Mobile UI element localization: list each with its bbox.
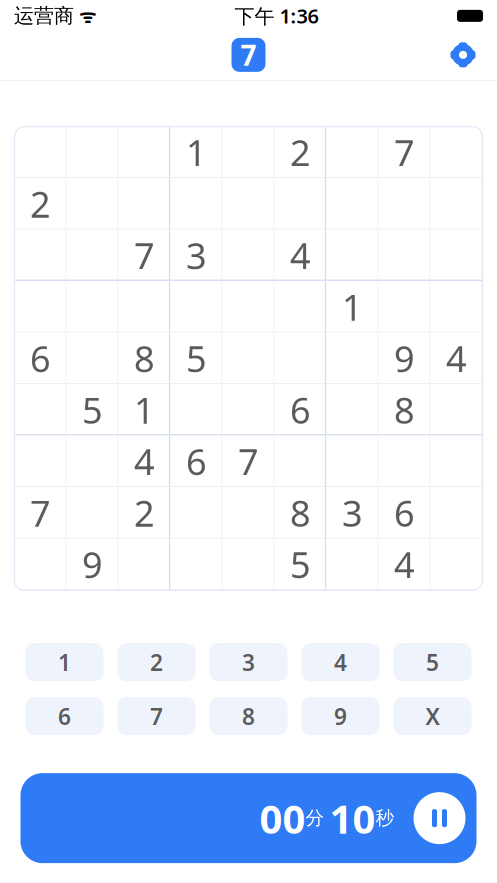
- button[interactable]: Cell row 7 column 2: [66, 436, 118, 487]
- button[interactable]: Cell row 5 column 3: [118, 333, 170, 384]
- button[interactable]: Cell row 9 column 6: [274, 539, 326, 590]
- button[interactable]: 8: [209, 697, 287, 735]
- button[interactable]: 1: [25, 643, 103, 681]
- button[interactable]: Cell row 9 column 9: [430, 539, 482, 590]
- button[interactable]: X: [393, 697, 471, 735]
- button[interactable]: 9: [301, 697, 379, 735]
- button[interactable]: Cell row 3 column 3: [118, 230, 170, 281]
- button[interactable]: Cell row 6 column 8: [378, 384, 430, 436]
- button[interactable]: Cell row 8 column 7: [326, 487, 378, 539]
- button[interactable]: Cell row 5 column 7: [326, 333, 378, 384]
- button[interactable]: Cell row 6 column 4: [170, 384, 222, 436]
- button[interactable]: Pause: [408, 787, 470, 849]
- staticText: 运营商: [14, 4, 74, 28]
- button[interactable]: Cell row 8 column 8: [378, 487, 430, 539]
- button[interactable]: Cell row 2 column 6: [274, 178, 326, 230]
- button[interactable]: Cell row 1 column 7: [326, 127, 378, 178]
- button[interactable]: Cell row 8 column 1: [14, 487, 66, 539]
- button[interactable]: Cell row 8 column 6: [274, 487, 326, 539]
- button[interactable]: Cell row 8 column 3: [118, 487, 170, 539]
- button[interactable]: Cell row 5 column 8: [378, 333, 430, 384]
- button[interactable]: Cell row 1 column 6: [274, 127, 326, 178]
- button[interactable]: Cell row 3 column 1: [14, 230, 66, 281]
- button[interactable]: 7: [231, 38, 265, 72]
- button[interactable]: Cell row 4 column 7: [326, 281, 378, 333]
- button[interactable]: Cell row 7 column 5: [222, 436, 274, 487]
- button[interactable]: Cell row 7 column 7: [326, 436, 378, 487]
- button[interactable]: Cell row 1 column 5: [222, 127, 274, 178]
- staticText: 下午 1:36: [234, 3, 318, 29]
- button[interactable]: Cell row 9 column 7: [326, 539, 378, 590]
- button[interactable]: 2: [117, 643, 195, 681]
- button[interactable]: Cell row 6 column 9: [430, 384, 482, 436]
- staticText: 00: [259, 792, 305, 845]
- button[interactable]: Cell row 3 column 6: [274, 230, 326, 281]
- button[interactable]: Cell row 3 column 7: [326, 230, 378, 281]
- button[interactable]: Cell row 7 column 1: [14, 436, 66, 487]
- button[interactable]: Cell row 9 column 5: [222, 539, 274, 590]
- button[interactable]: Settings: [443, 35, 483, 75]
- button[interactable]: 3: [209, 643, 287, 681]
- staticText: 4: [290, 231, 311, 279]
- button[interactable]: Cell row 4 column 6: [274, 281, 326, 333]
- button[interactable]: Cell row 7 column 4: [170, 436, 222, 487]
- button[interactable]: Cell row 6 column 3: [118, 384, 170, 436]
- staticText: 7: [240, 36, 256, 73]
- button[interactable]: Cell row 5 column 6: [274, 333, 326, 384]
- button[interactable]: Cell row 5 column 9: [430, 333, 482, 384]
- button[interactable]: Cell row 2 column 1: [14, 178, 66, 230]
- button[interactable]: Cell row 4 column 1: [14, 281, 66, 333]
- button[interactable]: 6: [25, 697, 103, 735]
- button[interactable]: Cell row 7 column 6: [274, 436, 326, 487]
- button[interactable]: Cell row 6 column 7: [326, 384, 378, 436]
- button[interactable]: Cell row 9 column 3: [118, 539, 170, 590]
- button[interactable]: Cell row 5 column 5: [222, 333, 274, 384]
- button[interactable]: 7: [117, 697, 195, 735]
- button[interactable]: Cell row 7 column 3: [118, 436, 170, 487]
- button[interactable]: Cell row 5 column 4: [170, 333, 222, 384]
- button[interactable]: Cell row 9 column 4: [170, 539, 222, 590]
- button[interactable]: Cell row 3 column 9: [430, 230, 482, 281]
- button[interactable]: Cell row 3 column 5: [222, 230, 274, 281]
- button[interactable]: Cell row 9 column 2: [66, 539, 118, 590]
- button[interactable]: Cell row 1 column 3: [118, 127, 170, 178]
- button[interactable]: Cell row 6 column 5: [222, 384, 274, 436]
- button[interactable]: Cell row 6 column 6: [274, 384, 326, 436]
- button[interactable]: Cell row 6 column 1: [14, 384, 66, 436]
- button[interactable]: Cell row 3 column 4: [170, 230, 222, 281]
- button[interactable]: Cell row 5 column 2: [66, 333, 118, 384]
- button[interactable]: Cell row 3 column 8: [378, 230, 430, 281]
- button[interactable]: Cell row 1 column 2: [66, 127, 118, 178]
- button[interactable]: Cell row 1 column 9: [430, 127, 482, 178]
- button[interactable]: Cell row 2 column 3: [118, 178, 170, 230]
- button[interactable]: Cell row 7 column 9: [430, 436, 482, 487]
- button[interactable]: Cell row 1 column 8: [378, 127, 430, 178]
- button[interactable]: Cell row 7 column 8: [378, 436, 430, 487]
- button[interactable]: 4: [301, 643, 379, 681]
- button[interactable]: Cell row 1 column 4: [170, 127, 222, 178]
- button[interactable]: Cell row 9 column 8: [378, 539, 430, 590]
- button[interactable]: Cell row 5 column 1: [14, 333, 66, 384]
- button[interactable]: Cell row 1 column 1: [14, 127, 66, 178]
- button[interactable]: Cell row 4 column 3: [118, 281, 170, 333]
- button[interactable]: Cell row 3 column 2: [66, 230, 118, 281]
- button[interactable]: 5: [393, 643, 471, 681]
- button[interactable]: Cell row 9 column 1: [14, 539, 66, 590]
- button[interactable]: Cell row 6 column 2: [66, 384, 118, 436]
- staticText: 1: [342, 283, 363, 331]
